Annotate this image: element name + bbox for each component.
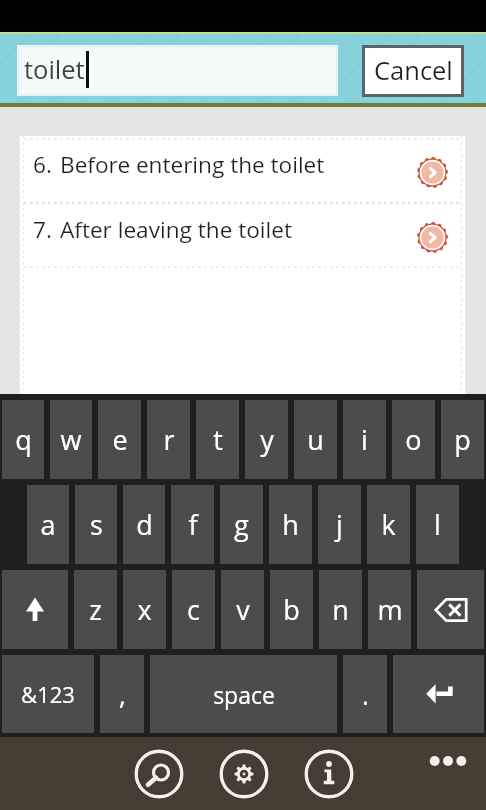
button[interactable]: . xyxy=(343,655,387,733)
button[interactable]: l xyxy=(416,485,459,564)
staticText: 7. xyxy=(33,214,52,245)
button[interactable]: d xyxy=(123,485,165,564)
button[interactable]: f xyxy=(171,485,214,564)
staticText: z xyxy=(89,591,102,628)
button[interactable]: b xyxy=(270,570,313,649)
button[interactable]: o xyxy=(392,400,435,479)
button[interactable]: More options xyxy=(430,751,466,771)
button[interactable]: t xyxy=(196,400,239,479)
button[interactable]: 6. xyxy=(20,138,465,203)
button[interactable]: space xyxy=(150,655,337,733)
staticText: d xyxy=(136,506,153,543)
staticText: toilet xyxy=(24,52,85,87)
button[interactable]: y xyxy=(245,400,288,479)
staticText: q xyxy=(15,421,32,458)
button[interactable]: i xyxy=(343,400,386,479)
staticText: Cancel xyxy=(374,53,453,88)
staticText: n xyxy=(332,591,349,628)
staticText: . xyxy=(362,677,369,712)
button[interactable]: u xyxy=(294,400,337,479)
staticText: x xyxy=(137,591,152,628)
button[interactable]: Cancel xyxy=(362,45,464,97)
button[interactable]: Search xyxy=(134,749,184,799)
staticText: j xyxy=(336,506,343,543)
staticText: w xyxy=(60,421,82,458)
staticText: o xyxy=(405,421,422,458)
button[interactable]: r xyxy=(147,400,190,479)
button[interactable]: c xyxy=(172,570,215,649)
staticText: l xyxy=(434,506,441,543)
staticText: u xyxy=(307,421,324,458)
staticText: h xyxy=(282,506,299,543)
staticText: space xyxy=(213,679,275,710)
staticText: b xyxy=(283,591,300,628)
staticText: &123 xyxy=(21,679,75,709)
staticText: m xyxy=(377,591,403,628)
staticText: After leaving the toilet xyxy=(60,214,292,245)
staticText: k xyxy=(381,506,396,543)
button[interactable]: w xyxy=(50,400,92,479)
button[interactable]: Settings xyxy=(219,749,269,799)
button[interactable]: x xyxy=(123,570,166,649)
button[interactable]: q xyxy=(2,400,44,479)
staticText: c xyxy=(187,591,200,628)
staticText: i xyxy=(361,421,368,458)
staticText: , xyxy=(119,677,126,712)
button[interactable]: s xyxy=(75,485,117,564)
staticText: s xyxy=(90,506,103,543)
button[interactable]: v xyxy=(221,570,264,649)
button[interactable]: Info xyxy=(304,749,354,799)
button[interactable]: a xyxy=(27,485,69,564)
staticText: r xyxy=(163,421,175,458)
staticText: a xyxy=(40,506,56,543)
button[interactable]: &123 xyxy=(2,655,94,733)
staticText: f xyxy=(188,506,198,543)
button[interactable]: Shift xyxy=(2,570,68,649)
staticText: y xyxy=(260,421,274,458)
button[interactable]: n xyxy=(319,570,362,649)
staticText: p xyxy=(454,421,471,458)
staticText: v xyxy=(236,591,250,628)
staticText: e xyxy=(112,421,128,458)
button[interactable]: Backspace xyxy=(417,570,484,649)
button[interactable]: , xyxy=(100,655,144,733)
button[interactable]: z xyxy=(74,570,117,649)
button[interactable]: m xyxy=(368,570,411,649)
button[interactable]: j xyxy=(318,485,361,564)
button[interactable]: e xyxy=(98,400,141,479)
button[interactable]: h xyxy=(269,485,312,564)
button[interactable]: k xyxy=(367,485,410,564)
staticText: Before entering the toilet xyxy=(60,149,325,180)
staticText: 6. xyxy=(33,149,52,180)
button[interactable]: p xyxy=(441,400,484,479)
staticText: t xyxy=(213,421,223,458)
button[interactable]: g xyxy=(220,485,263,564)
button[interactable]: Enter xyxy=(393,655,484,733)
staticText: g xyxy=(234,506,249,543)
button[interactable]: 7. xyxy=(20,203,465,268)
button[interactable]: toilet xyxy=(17,45,338,96)
